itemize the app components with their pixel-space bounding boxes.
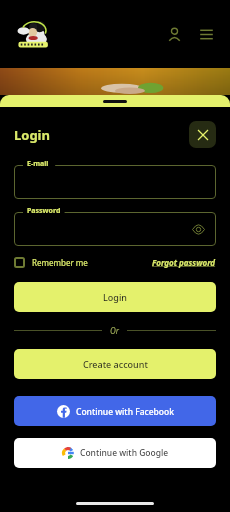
button[interactable]: Create account — [14, 349, 216, 379]
staticText: Or — [110, 325, 119, 336]
staticText: Continue with Facebook — [76, 406, 174, 418]
staticText: Forgot password — [152, 257, 216, 268]
staticText: Remember me — [32, 257, 88, 268]
staticText: Login — [103, 291, 127, 303]
button[interactable]: Close — [189, 121, 216, 148]
button[interactable]: Login — [14, 282, 216, 312]
button[interactable]: Logo — [12, 17, 58, 51]
staticText: Password — [27, 206, 61, 216]
button[interactable]: Menu — [194, 22, 218, 46]
button[interactable]: Continue with Google — [14, 438, 216, 468]
button[interactable]: Account — [162, 22, 186, 46]
staticText: Continue with Google — [80, 447, 169, 459]
staticText: Login — [14, 126, 50, 144]
button[interactable]: Forgot password — [152, 257, 216, 268]
button[interactable]: E-mail — [14, 165, 216, 199]
button[interactable]: Password — [14, 212, 216, 246]
staticText: E-mail — [27, 159, 49, 169]
staticText: Create account — [83, 358, 148, 370]
button[interactable]: Remember me — [14, 257, 88, 268]
button[interactable]: Continue with Facebook — [14, 396, 216, 426]
button[interactable]: Show password — [190, 221, 206, 237]
